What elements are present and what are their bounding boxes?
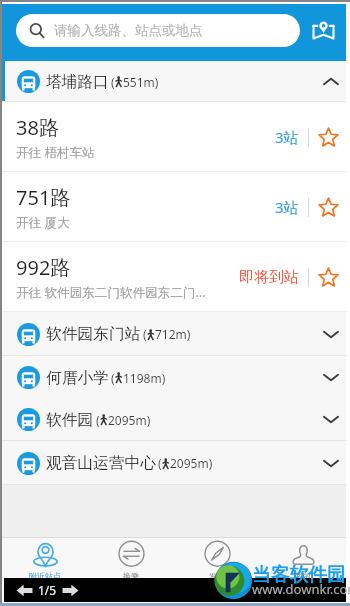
staticText: 软件园东门站 <box>46 324 141 344</box>
staticText: 当客软件园 <box>252 563 346 587</box>
staticText: 1198m) <box>123 370 166 386</box>
staticText: 开往 梧村车站 <box>16 144 95 161</box>
staticText: 2095m) <box>108 412 151 428</box>
staticText: 551m) <box>123 74 159 90</box>
staticText: 附近站点 <box>29 571 61 581</box>
button[interactable]: 992路 <box>2 242 346 312</box>
staticText: 换乘 <box>123 571 139 581</box>
staticText: 992路 <box>16 254 71 281</box>
button[interactable]: 我的 <box>260 537 346 585</box>
button[interactable]: 38路 <box>2 102 346 172</box>
button[interactable]: 软件园 <box>2 398 346 441</box>
staticText: 开往 厦大 <box>16 214 70 231</box>
button[interactable]: 换乘 <box>88 537 174 585</box>
staticText: 712m) <box>155 326 191 342</box>
staticText: 观音山运营中心 <box>46 453 156 473</box>
staticText: 1/5 <box>38 582 57 598</box>
button[interactable]: 何厝小学 <box>2 356 346 399</box>
staticText: 38路 <box>16 114 59 141</box>
staticText: ( <box>96 412 100 428</box>
staticText: 即将到站 <box>239 268 299 287</box>
button[interactable]: Favorite <box>317 266 340 289</box>
staticText: 发现 <box>209 571 225 581</box>
staticText: 开往 软件园东二门软件园东二门… <box>16 284 206 301</box>
button[interactable]: 751路 <box>2 172 346 242</box>
button[interactable]: 观音山运营中心 <box>2 441 346 485</box>
staticText: 2095m) <box>170 455 213 471</box>
button[interactable]: Map <box>306 13 340 47</box>
staticText: ( <box>111 74 115 90</box>
button[interactable]: 塔埔路口 <box>2 61 346 102</box>
staticText: 塔埔路口 <box>46 72 109 92</box>
button[interactable]: 发现 <box>174 537 260 585</box>
button[interactable]: Favorite <box>317 196 340 219</box>
button[interactable]: 软件园东门站 <box>2 312 346 356</box>
staticText: ( <box>158 455 162 471</box>
staticText: 我的 <box>295 571 311 581</box>
staticText: ( <box>111 370 115 386</box>
staticText: ( <box>143 326 147 342</box>
staticText: 3站 <box>275 127 299 147</box>
staticText: 何厝小学 <box>46 368 109 388</box>
button[interactable]: Favorite <box>317 126 340 149</box>
staticText: 请输入线路、站点或地点 <box>54 22 203 39</box>
staticText: 3站 <box>275 197 299 217</box>
button[interactable]: 附近站点 <box>2 537 88 585</box>
staticText: 751路 <box>16 184 71 211</box>
staticText: www.downkr.com <box>252 580 350 598</box>
button[interactable]: 请输入线路、站点或地点 <box>16 14 300 47</box>
staticText: 软件园 <box>46 410 94 430</box>
